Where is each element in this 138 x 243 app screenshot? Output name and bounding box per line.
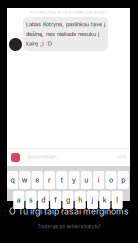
button[interactable]: h — [75, 191, 86, 209]
button[interactable]: q — [7, 171, 18, 189]
button[interactable]: l — [112, 191, 123, 209]
staticText: h — [78, 196, 82, 204]
button[interactable]: s — [25, 191, 37, 209]
staticText: q — [11, 176, 15, 184]
button[interactable]: j — [87, 191, 98, 209]
button[interactable]: o — [105, 171, 116, 189]
staticText: t — [61, 176, 63, 184]
staticText: d — [41, 196, 45, 204]
staticText: l — [116, 196, 118, 204]
button[interactable]: Send a GIF — [11, 153, 20, 162]
staticText: g — [66, 196, 70, 204]
staticText: r — [48, 176, 51, 184]
staticText: o — [109, 176, 113, 184]
staticText: u — [84, 176, 88, 184]
staticText: w — [22, 176, 28, 184]
staticText: Labas Kotryna, paslinkau tave į — [26, 21, 105, 28]
button[interactable]: u — [81, 171, 92, 189]
staticText: O Tu irgi taip rašai merginoms — [9, 206, 129, 216]
button[interactable]: i — [93, 171, 104, 189]
button[interactable]: Type a message... — [26, 148, 104, 166]
button[interactable]: t — [56, 171, 67, 189]
button[interactable]: e — [32, 171, 43, 189]
button[interactable]: r — [44, 171, 55, 189]
staticText: f — [54, 196, 57, 204]
button[interactable]: Send — [112, 148, 126, 166]
staticText: Tinderyje po kelivera matytis? — [37, 224, 100, 229]
staticText: j — [91, 196, 93, 204]
staticText: Send — [117, 155, 126, 159]
staticText: YOU MATCHED WITH AURIMAS ON 3/1/2017 — [29, 10, 107, 14]
button[interactable]: k — [99, 191, 110, 209]
button[interactable]: y — [68, 171, 80, 189]
staticText: i — [98, 176, 100, 184]
staticText: y — [72, 176, 76, 184]
staticText: kairę ;) :D — [26, 40, 52, 47]
staticText: Type a message... — [26, 154, 59, 159]
button[interactable]: w — [19, 171, 30, 189]
button[interactable]: a — [13, 191, 24, 209]
button[interactable]: p — [118, 171, 129, 189]
button[interactable]: d — [38, 191, 49, 209]
staticText: a — [17, 196, 21, 204]
staticText: e — [35, 176, 39, 184]
button[interactable]: f — [50, 191, 61, 209]
staticText: k — [103, 196, 107, 204]
staticText: dešinę, nes niekada nesuku į — [26, 31, 99, 37]
staticText: p — [121, 176, 125, 184]
button[interactable]: g — [62, 191, 73, 209]
staticText: s — [29, 196, 33, 204]
